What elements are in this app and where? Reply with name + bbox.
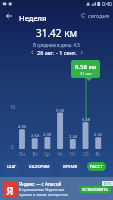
button[interactable]: Я xyxy=(0,177,113,200)
staticText: УСТАНОВИТЬ xyxy=(82,187,108,192)
button[interactable]: ВРЕМЯ xyxy=(60,162,81,171)
staticText: 2.44 xyxy=(67,134,79,139)
staticText: 31.42 км xyxy=(36,26,78,40)
staticText: ID X xyxy=(104,181,111,186)
staticText: 0:40 xyxy=(102,1,112,8)
staticText: КАЛОРИИ xyxy=(29,164,50,170)
staticText: ШАГ xyxy=(7,164,17,170)
staticText: 26 авг. - 1 сент. xyxy=(37,49,77,56)
staticText: 0 xyxy=(11,144,14,150)
button[interactable]: Back xyxy=(2,9,16,23)
button[interactable]: сегодня xyxy=(81,10,110,21)
staticText: Сб xyxy=(80,151,92,157)
staticText: 4.86 xyxy=(16,124,28,129)
staticText: 6.58 км xyxy=(75,63,97,71)
button[interactable]: УСТАНОВИТЬ xyxy=(79,186,111,193)
staticText: Чт xyxy=(54,151,66,157)
button[interactable]: Previous week xyxy=(28,48,37,57)
staticText: В среднем в день: 4.5 xyxy=(33,42,80,48)
staticText: Ср xyxy=(41,151,53,157)
button[interactable]: 6.58 км xyxy=(71,60,100,78)
staticText: Пт xyxy=(67,151,79,157)
staticText: 31 авг. xyxy=(80,71,93,76)
staticText: сегодня xyxy=(88,12,110,19)
button[interactable]: ШАГ xyxy=(3,162,20,171)
staticText: РАССТ xyxy=(90,164,103,170)
staticText: Пн xyxy=(16,151,28,157)
staticText: 9.00 xyxy=(54,108,66,113)
staticText: 6.58 xyxy=(80,117,92,122)
staticText: 2.92 xyxy=(92,132,104,137)
button[interactable]: РАССТ xyxy=(87,162,106,171)
button[interactable]: Next week xyxy=(77,48,86,57)
staticText: 2.64 xyxy=(29,133,41,138)
button[interactable]: Close ad xyxy=(102,181,113,186)
staticText: В приложении Яндекс все нужное и самое и… xyxy=(19,187,69,197)
staticText: 2.98 xyxy=(41,132,53,137)
button[interactable]: КАЛОРИИ xyxy=(25,162,53,171)
staticText: Вт xyxy=(29,151,41,157)
staticText: Неделя xyxy=(19,13,47,23)
staticText: 10 xyxy=(10,104,16,110)
staticText: Вс xyxy=(92,151,104,157)
staticText: Я xyxy=(6,183,14,198)
staticText: ВРЕМЯ xyxy=(63,164,78,170)
staticText: Яндекс — с Алисой xyxy=(19,181,62,187)
